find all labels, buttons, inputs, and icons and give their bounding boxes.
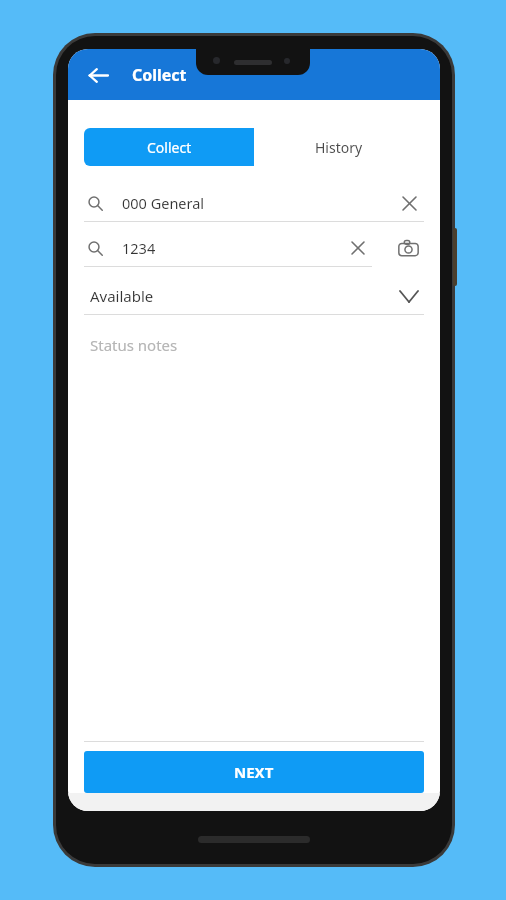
staticText: 1234: [122, 238, 156, 258]
staticText: Status notes: [90, 335, 178, 355]
button[interactable]: NEXT: [84, 751, 424, 793]
button[interactable]: Back: [80, 57, 116, 93]
staticText: NEXT: [234, 762, 274, 782]
button[interactable]: Status notes: [84, 327, 424, 742]
staticText: History: [315, 138, 363, 157]
button[interactable]: Clear: [344, 234, 372, 262]
button[interactable]: Available: [84, 277, 424, 315]
button[interactable]: 000 General: [84, 184, 424, 222]
staticText: Available: [90, 286, 154, 306]
button[interactable]: 1234: [84, 229, 372, 267]
button[interactable]: History: [254, 128, 424, 166]
button[interactable]: Scan barcode with camera: [392, 232, 424, 264]
staticText: 000 General: [122, 193, 205, 213]
staticText: Collect: [147, 138, 192, 157]
button[interactable]: Collect: [84, 128, 254, 166]
button[interactable]: Clear: [394, 188, 424, 218]
staticText: Collect: [132, 64, 187, 86]
